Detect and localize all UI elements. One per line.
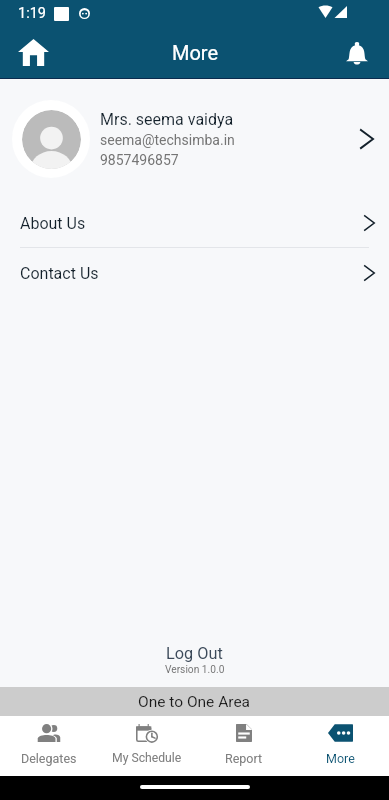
button[interactable]: Contact Us [0,248,389,298]
staticText: More [172,41,219,64]
staticText: Log Out [166,644,223,663]
staticText: My Schedule [112,751,182,765]
button[interactable]: Log Out [0,644,389,676]
button[interactable]: More [292,716,389,766]
staticText: One to One Area [138,693,251,711]
button[interactable]: Mrs. seema vaidya [0,79,389,198]
staticText: 1:19 [18,5,46,22]
button[interactable]: Report [195,716,292,766]
button[interactable]: Delegates [0,716,98,766]
button[interactable]: About Us [0,198,389,248]
staticText: Version 1.0.0 [165,664,225,676]
staticText: More [326,751,355,766]
staticText: Delegates [21,751,77,766]
staticText: Contact Us [20,264,364,283]
staticText: seema@techsimba.in [100,132,235,148]
button[interactable]: Home [6,28,58,78]
staticText: Mrs. seema vaidya [100,110,234,129]
staticText: Report [225,751,263,766]
staticText: About Us [20,214,364,233]
staticText: 9857496857 [100,152,179,168]
button[interactable]: My Schedule [98,716,195,765]
button[interactable]: Notifications [331,28,383,78]
